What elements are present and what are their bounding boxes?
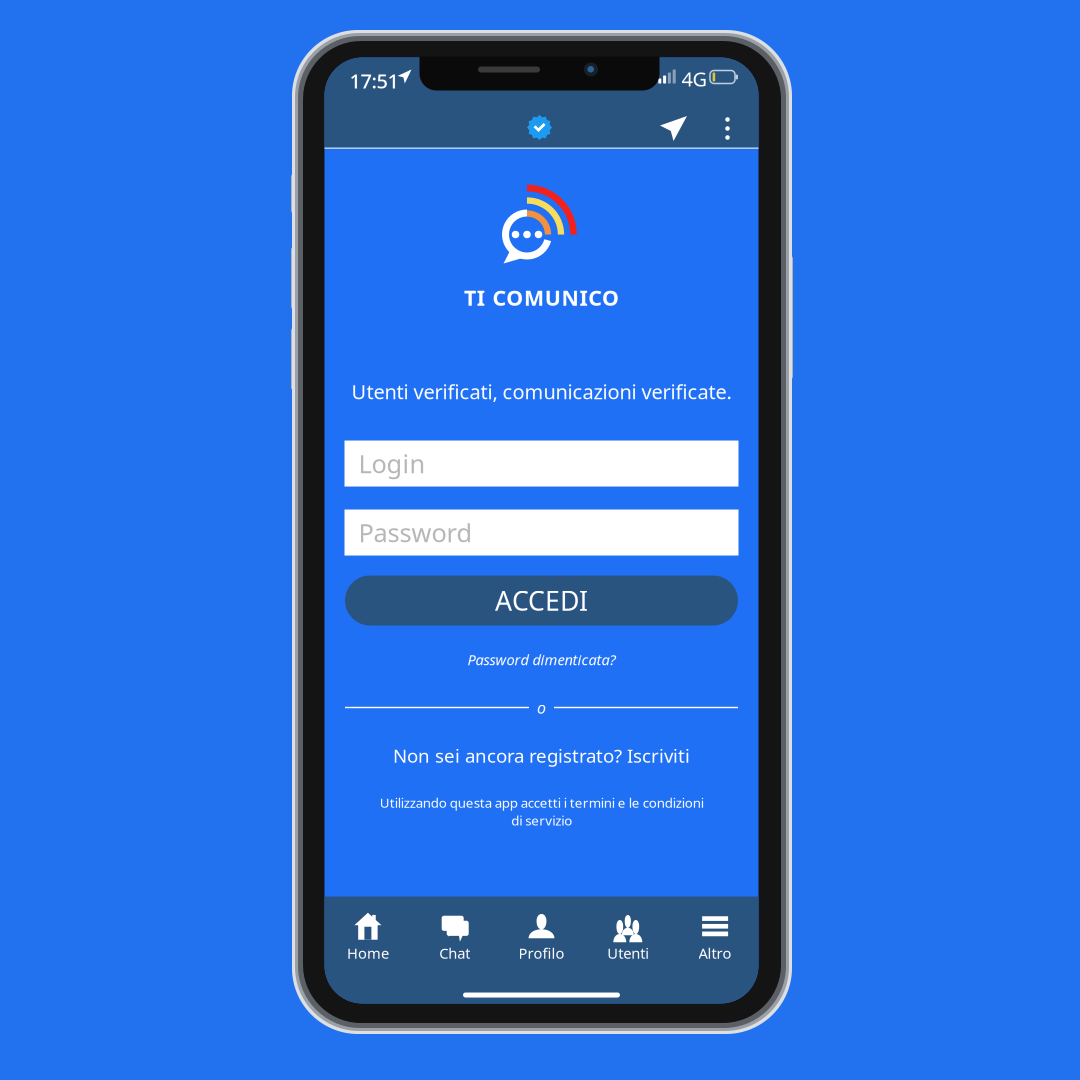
staticText: Utenti verificati, comunicazioni verific… (351, 378, 731, 405)
button[interactable]: Profilo (498, 907, 585, 969)
button[interactable]: Altro (672, 907, 758, 969)
staticText: Password (358, 516, 472, 549)
staticText: Non sei ancora registrato? Iscriviti (393, 743, 690, 768)
staticText: 4G (681, 65, 707, 92)
button[interactable]: Non sei ancora registrato? Iscriviti (324, 741, 758, 769)
button[interactable]: Chat (411, 907, 498, 969)
staticText: Chat (439, 943, 470, 963)
staticText: Utilizzando questa app accetti i termini… (379, 794, 703, 829)
staticText: o (537, 697, 546, 718)
button[interactable]: Altre opzioni (709, 105, 745, 151)
staticText: Profilo (518, 943, 564, 963)
button[interactable]: ACCEDI (345, 575, 738, 625)
staticText: 17:51 (349, 67, 398, 94)
staticText: TI COMUNICO (464, 283, 619, 312)
staticText: Altro (699, 943, 732, 963)
button[interactable]: Password (344, 509, 738, 555)
button[interactable]: Login (344, 440, 738, 486)
button[interactable]: Utenti (585, 907, 672, 969)
button[interactable]: Verificato (516, 104, 562, 150)
staticText: Password dimenticata? (467, 650, 615, 669)
button[interactable]: Password dimenticata? (324, 646, 758, 672)
staticText: ACCEDI (495, 583, 588, 618)
staticText: Utenti (607, 943, 649, 963)
button[interactable]: Invia (650, 105, 696, 151)
staticText: Login (358, 447, 425, 480)
button[interactable]: Home (324, 907, 411, 969)
staticText: Home (347, 943, 389, 963)
